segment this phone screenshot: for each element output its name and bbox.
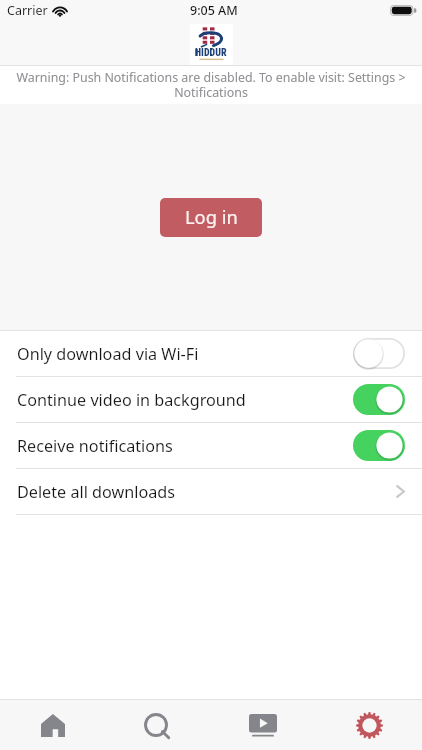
- other: Open: [396, 485, 405, 498]
- button[interactable]: Home: [0, 700, 105, 750]
- button[interactable]: Only download via Wi-Fi: [0, 331, 422, 376]
- button[interactable]: Delete all downloads: [0, 469, 422, 514]
- staticText: Delete all downloads: [17, 481, 175, 503]
- button[interactable]: Settings: [316, 700, 422, 750]
- staticText: Continue video in background: [17, 389, 246, 411]
- button[interactable]: Toggle on: [353, 384, 405, 415]
- staticText: Warning: Push Notifications are disabled…: [12, 69, 410, 100]
- button[interactable]: Receive notifications: [0, 423, 422, 468]
- button[interactable]: Search: [105, 700, 210, 750]
- staticText: Log in: [185, 204, 238, 229]
- button[interactable]: Toggle off: [353, 338, 405, 369]
- button[interactable]: Toggle on: [353, 430, 405, 461]
- staticText: 9:05 AM: [190, 2, 238, 19]
- staticText: Receive notifications: [17, 435, 173, 457]
- button[interactable]: Continue video in background: [0, 377, 422, 422]
- button[interactable]: Log in: [160, 198, 262, 237]
- button[interactable]: Videos: [210, 700, 316, 750]
- staticText: Carrier: [7, 2, 48, 19]
- staticText: HIDDUR: [195, 47, 227, 59]
- staticText: Only download via Wi-Fi: [17, 343, 199, 365]
